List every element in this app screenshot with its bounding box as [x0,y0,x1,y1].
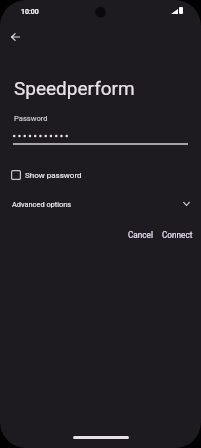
button[interactable]: Navigate up [0,21,31,53]
staticText: Cancel [128,230,153,240]
staticText: Show password [25,171,82,180]
staticText: Speedperform [14,77,135,99]
button[interactable]: Advanced options [0,195,201,213]
button[interactable]: Cancel [123,227,158,243]
button[interactable]: Connect [158,227,197,243]
staticText: Connect [162,230,193,240]
staticText: Advanced options [12,200,72,209]
staticText: Password [14,114,48,123]
button[interactable]: Password [0,108,201,148]
button[interactable]: Show password [11,166,82,184]
staticText: 10:00 [21,8,39,16]
